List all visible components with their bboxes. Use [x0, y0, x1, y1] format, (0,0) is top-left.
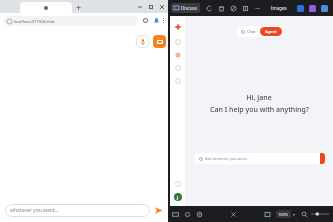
button[interactable]: Maximize — [149, 5, 153, 9]
button[interactable]: Purple app — [309, 5, 316, 12]
staticText: Hi, Jane — [246, 93, 272, 103]
button[interactable]: Ask whatever you want... — [195, 153, 325, 164]
button[interactable]: Blue app — [297, 5, 304, 12]
staticText: Agent — [265, 29, 277, 34]
button[interactable]: Close — [160, 5, 164, 9]
staticText: Discuss — [181, 5, 197, 11]
button[interactable]: ▾ — [293, 212, 296, 217]
button[interactable]: Send — [154, 206, 163, 215]
button[interactable]: Apps — [175, 78, 181, 84]
staticText: localhost:5173/#/chat — [14, 19, 55, 24]
staticText: Ask whatever you want... — [205, 156, 250, 161]
button[interactable] — [20, 2, 72, 13]
staticText: whatever you want... — [10, 207, 59, 214]
button[interactable]: 100% — [276, 210, 291, 218]
button[interactable]: Microphone — [136, 35, 149, 48]
staticText: 100% — [278, 212, 289, 217]
button[interactable]: More — [163, 18, 164, 23]
button[interactable]: localhost:5173/#/chat — [4, 16, 138, 26]
button[interactable]: Delete — [218, 5, 225, 12]
button[interactable]: Send message — [320, 153, 325, 164]
button[interactable]: Assistant — [153, 35, 166, 48]
staticText: J — [177, 195, 179, 200]
button[interactable]: Bookmarks — [175, 52, 181, 58]
button[interactable]: Discuss — [171, 3, 200, 13]
button[interactable]: History — [175, 39, 181, 45]
button[interactable]: Stop — [230, 5, 237, 12]
button[interactable]: New chat — [174, 23, 182, 31]
button[interactable]: Favorite — [184, 211, 191, 218]
button[interactable]: Fit to screen — [230, 211, 237, 218]
button[interactable]: Cloud app — [321, 5, 328, 12]
button[interactable]: Files — [175, 65, 181, 71]
staticText: Can I help you with anything? — [210, 105, 309, 115]
button[interactable]: Screenshot — [264, 211, 271, 218]
button[interactable]: Profile — [153, 17, 160, 24]
button[interactable]: Extensions — [142, 17, 149, 24]
button[interactable]: Chat — [237, 27, 260, 36]
button[interactable]: Undo — [206, 5, 213, 12]
button[interactable]: — — [255, 5, 261, 12]
staticText: Chat — [247, 29, 256, 34]
button[interactable]: Images — [271, 5, 287, 11]
button[interactable]: Settings — [196, 211, 203, 218]
button[interactable]: whatever you want... — [5, 204, 150, 217]
button[interactable]: + — [76, 1, 82, 13]
button[interactable]: Zoom — [301, 211, 308, 218]
button[interactable]: Account — [174, 193, 182, 201]
button[interactable]: Grid — [242, 5, 249, 12]
button[interactable]: Agent — [260, 27, 282, 36]
button[interactable]: Zoom slider — [311, 210, 329, 218]
button[interactable]: Settings — [175, 181, 181, 187]
button[interactable]: Minimize — [138, 5, 142, 9]
button[interactable]: Desktop preview — [172, 211, 179, 218]
